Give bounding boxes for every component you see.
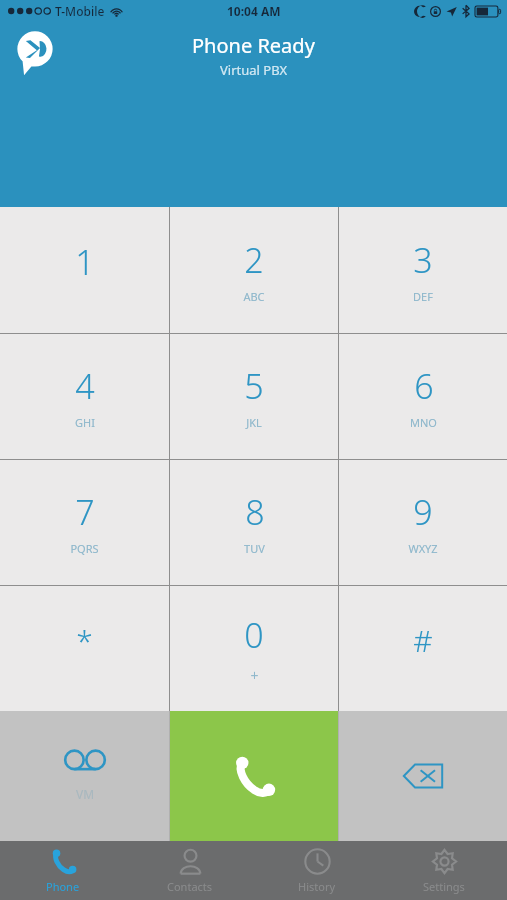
button[interactable]: #	[339, 586, 507, 711]
staticText: Settings	[423, 879, 465, 894]
staticText: T-Mobile	[55, 3, 105, 19]
staticText: ABC	[243, 289, 265, 304]
staticText: GHI	[75, 415, 95, 430]
button[interactable]: Backspace	[339, 711, 507, 841]
staticText: TUV	[244, 541, 265, 556]
button[interactable]: *	[0, 586, 169, 711]
staticText: Phone Ready	[192, 32, 315, 59]
button[interactable]: 8	[170, 460, 338, 585]
staticText: 3	[413, 237, 433, 283]
button[interactable]: 7	[0, 460, 169, 585]
staticText: 6	[414, 363, 434, 409]
staticText: +	[250, 666, 259, 685]
staticText: 8	[245, 489, 265, 535]
staticText: MNO	[410, 415, 437, 430]
staticText: 10:04 AM	[227, 3, 281, 19]
button[interactable]: Phone	[0, 841, 126, 900]
staticText: PQRS	[70, 541, 99, 556]
staticText: 5	[244, 363, 264, 409]
button[interactable]: 3	[339, 207, 507, 333]
button[interactable]: 9	[339, 460, 507, 585]
staticText: 9	[413, 489, 433, 535]
staticText: WXYZ	[408, 541, 438, 556]
staticText: 4	[75, 363, 95, 409]
staticText: 2	[244, 237, 264, 283]
button[interactable]: 6	[339, 334, 507, 459]
staticText: Contacts	[167, 879, 213, 894]
staticText: Virtual PBX	[220, 61, 288, 79]
button[interactable]: 1	[0, 207, 169, 333]
staticText: 7	[75, 489, 95, 535]
button[interactable]: History	[253, 841, 380, 900]
staticText: History	[298, 879, 336, 894]
button[interactable]: 2	[170, 207, 338, 333]
staticText: #	[413, 620, 433, 661]
button[interactable]: Settings	[380, 841, 507, 900]
staticText: DEF	[413, 289, 433, 304]
button[interactable]: VM	[0, 711, 169, 841]
button[interactable]: 4	[0, 334, 169, 459]
button[interactable]: Call	[170, 711, 338, 841]
staticText: *	[76, 620, 93, 661]
button[interactable]: 5	[170, 334, 338, 459]
button[interactable]: Account	[14, 30, 56, 72]
staticText: JKL	[246, 415, 262, 430]
staticText: Phone	[46, 879, 80, 894]
staticText: 0	[244, 612, 264, 658]
staticText: 1	[75, 239, 95, 285]
button[interactable]: 0	[170, 586, 338, 711]
button[interactable]: Contacts	[126, 841, 253, 900]
staticText: VM	[76, 786, 95, 802]
